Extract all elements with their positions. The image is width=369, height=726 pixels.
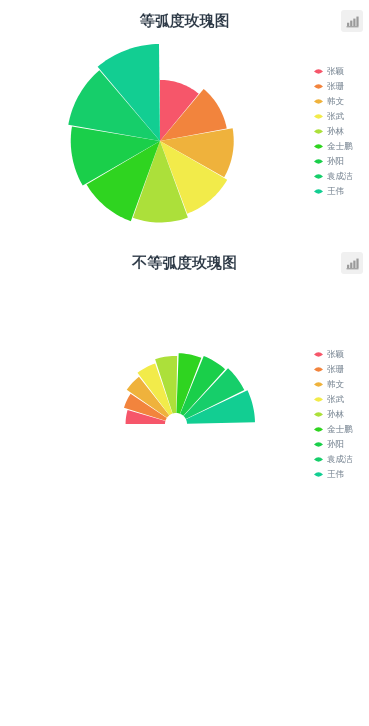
button[interactable]: 王伟 <box>314 184 344 199</box>
staticText: 张珊 <box>327 364 344 375</box>
staticText: 孙林 <box>327 409 344 420</box>
staticText: 张武 <box>327 111 344 122</box>
staticText: 等弧度玫瑰图 <box>0 12 369 31</box>
staticText: 王伟 <box>327 469 344 480</box>
staticText: 韩文 <box>327 379 344 390</box>
staticText: 张颖 <box>327 66 344 77</box>
button[interactable]: 张珊 <box>314 79 344 94</box>
staticText: 王伟 <box>327 186 344 197</box>
button[interactable]: 孙林 <box>314 407 344 422</box>
staticText: 孙阳 <box>327 156 344 167</box>
button[interactable]: 张武 <box>314 109 344 124</box>
button[interactable]: 金士鹏 <box>314 139 353 154</box>
staticText: 孙阳 <box>327 439 344 450</box>
staticText: 孙林 <box>327 126 344 137</box>
button[interactable]: Switch chart type <box>341 252 363 274</box>
staticText: 袁成洁 <box>327 171 353 182</box>
button[interactable]: 张武 <box>314 392 344 407</box>
button[interactable]: 王伟 <box>314 467 344 482</box>
staticText: 张武 <box>327 394 344 405</box>
button[interactable]: 孙阳 <box>314 437 344 452</box>
staticText: 张珊 <box>327 81 344 92</box>
button[interactable]: 韩文 <box>314 377 344 392</box>
button[interactable]: 孙阳 <box>314 154 344 169</box>
button[interactable]: 张颖 <box>314 64 344 79</box>
button[interactable]: 张珊 <box>314 362 344 377</box>
button[interactable]: 张颖 <box>314 347 344 362</box>
staticText: 袁成洁 <box>327 454 353 465</box>
staticText: 金士鹏 <box>327 424 353 435</box>
staticText: 不等弧度玫瑰图 <box>0 254 369 273</box>
button[interactable]: 孙林 <box>314 124 344 139</box>
button[interactable]: 袁成洁 <box>314 452 353 467</box>
button[interactable]: 袁成洁 <box>314 169 353 184</box>
button[interactable]: Switch chart type <box>341 10 363 32</box>
staticText: 金士鹏 <box>327 141 353 152</box>
staticText: 张颖 <box>327 349 344 360</box>
button[interactable]: 韩文 <box>314 94 344 109</box>
button[interactable]: 金士鹏 <box>314 422 353 437</box>
staticText: 韩文 <box>327 96 344 107</box>
